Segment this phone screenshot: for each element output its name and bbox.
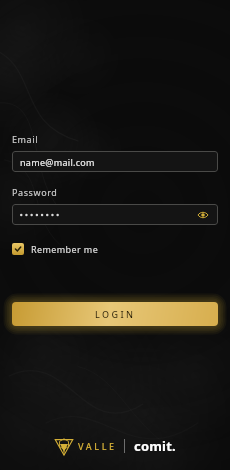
button[interactable]: Show password [12,204,218,225]
staticText: Password [12,186,58,198]
staticText: VALLE [78,440,117,452]
button[interactable]: Remember me [12,240,99,258]
button[interactable]: Show password [196,208,210,222]
staticText: Remember me [31,243,99,255]
button[interactable]: LOGIN [12,302,218,326]
staticText: LOGIN [95,308,136,320]
staticText: Email [12,133,39,145]
button[interactable]: name@mail.com [12,151,218,172]
staticText: name@mail.com [20,156,95,168]
staticText: comit. [134,437,176,455]
